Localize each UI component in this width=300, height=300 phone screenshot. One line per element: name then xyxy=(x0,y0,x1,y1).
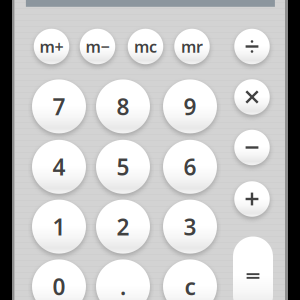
button[interactable]: 3 xyxy=(158,195,222,259)
staticText: 7 xyxy=(52,91,65,121)
staticText: 9 xyxy=(183,91,196,121)
button[interactable]: 8 xyxy=(91,74,155,138)
staticText: m+ xyxy=(39,36,63,57)
staticText: mc xyxy=(134,36,157,57)
button[interactable]: 7 xyxy=(27,74,91,138)
button[interactable]: 4 xyxy=(27,135,91,199)
button[interactable]: Minus xyxy=(229,125,275,170)
staticText: 6 xyxy=(183,152,196,182)
button[interactable]: 6 xyxy=(158,135,222,199)
button[interactable]: mc xyxy=(123,24,168,69)
staticText: . xyxy=(120,271,126,300)
button[interactable]: 5 xyxy=(91,135,155,199)
button[interactable]: 0 xyxy=(27,254,91,300)
button[interactable]: 1 xyxy=(27,195,91,259)
staticText: 8 xyxy=(116,91,129,121)
staticText: 3 xyxy=(183,211,196,242)
staticText: m− xyxy=(85,36,109,57)
staticText: 5 xyxy=(116,152,129,182)
staticText: mr xyxy=(181,36,203,57)
staticText: 1 xyxy=(52,211,65,242)
staticText: 0 xyxy=(52,271,65,300)
button[interactable]: c xyxy=(158,254,222,300)
button[interactable]: Divide xyxy=(229,24,275,69)
button[interactable]: m+ xyxy=(29,24,74,69)
staticText: c xyxy=(184,271,195,300)
button[interactable]: Equals xyxy=(233,236,273,300)
button[interactable]: 2 xyxy=(91,195,155,259)
button[interactable]: Plus xyxy=(229,176,275,222)
staticText: 2 xyxy=(116,211,129,242)
button[interactable]: 9 xyxy=(158,74,222,138)
button[interactable]: mr xyxy=(169,24,215,69)
staticText: 4 xyxy=(52,152,65,182)
button[interactable]: Multiply xyxy=(229,74,275,120)
button[interactable]: . xyxy=(91,254,155,300)
button[interactable]: m− xyxy=(75,24,120,69)
